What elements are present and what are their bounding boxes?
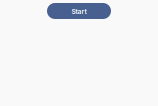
button[interactable]: Start	[47, 3, 111, 19]
staticText: Start	[71, 7, 86, 16]
